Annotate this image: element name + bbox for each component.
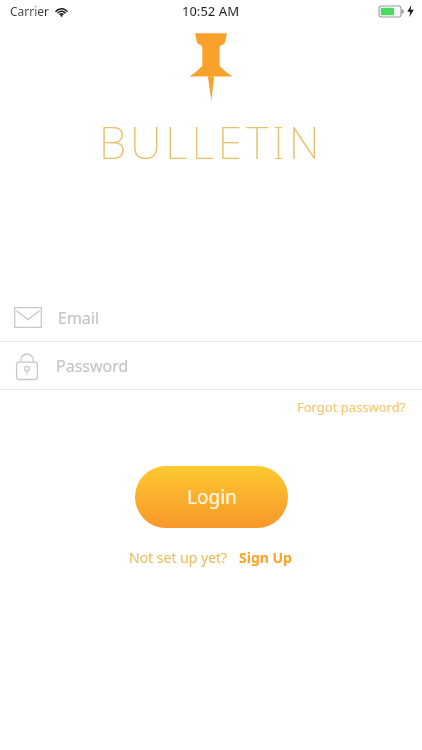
button[interactable]: Forgot password? <box>0 395 422 419</box>
button[interactable]: Email <box>0 294 422 341</box>
staticText: Password <box>56 355 129 377</box>
staticText: 10:52 AM <box>182 2 240 20</box>
staticText: Carrier <box>10 3 50 19</box>
staticText: Login <box>187 484 237 510</box>
button[interactable]: Password <box>0 342 422 389</box>
staticText: Sign Up <box>239 548 292 567</box>
staticText: Not set up yet? <box>129 548 228 567</box>
staticText: Email <box>58 307 100 329</box>
staticText: BULLETIN <box>99 112 324 172</box>
other: Email <box>14 307 42 328</box>
button[interactable]: Login <box>135 466 288 528</box>
button[interactable]: Sign Up <box>237 545 294 570</box>
staticText: Forgot password? <box>297 398 406 416</box>
other: Bulletin pin logo <box>183 30 239 102</box>
other: Password <box>14 351 40 381</box>
